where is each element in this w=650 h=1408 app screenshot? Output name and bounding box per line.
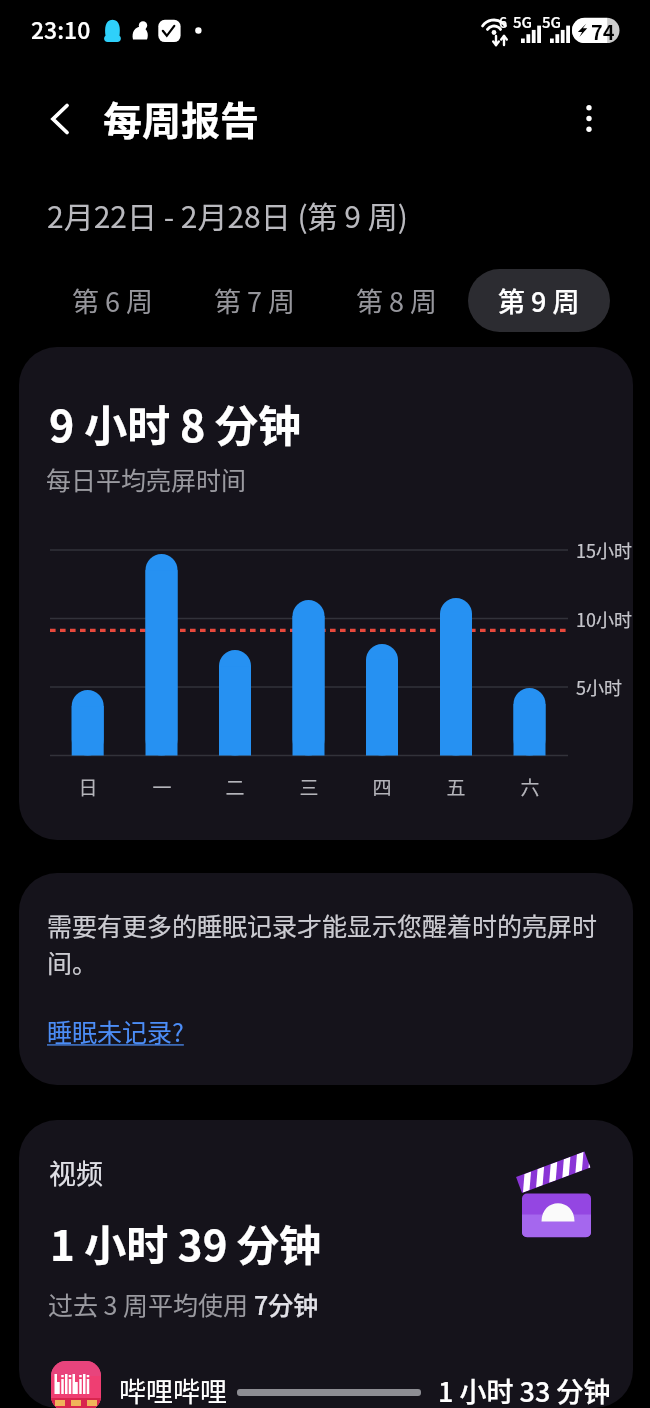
staticText: 第 9 周 (498, 281, 580, 320)
button[interactable]: 哔哩哔哩 (32, 1348, 620, 1408)
staticText: 日 (72, 773, 104, 801)
staticText: 5G (513, 11, 533, 33)
staticText: 四 (366, 773, 398, 801)
staticText: 23:10 (31, 12, 91, 45)
button[interactable]: 睡眠未记录? (47, 1013, 184, 1049)
button[interactable]: More options (560, 90, 618, 148)
button[interactable]: 第 7 周 (214, 281, 296, 320)
button[interactable]: 第 9 周 (468, 269, 610, 332)
button[interactable]: 视频 (19, 1120, 633, 1408)
button[interactable]: Back (28, 90, 86, 148)
staticText: 1 小时 39 分钟 (50, 1212, 321, 1273)
staticText: 二 (219, 773, 251, 801)
staticText: 哔哩哔哩 (119, 1371, 227, 1408)
staticText: 视频 (49, 1153, 103, 1192)
staticText: 过去 3 周平均使用 (48, 1286, 254, 1322)
button[interactable]: 每周报告 (103, 90, 260, 146)
staticText: 5小时 (576, 674, 622, 700)
staticText: 一 (146, 773, 178, 801)
staticText: 5G (542, 11, 562, 33)
staticText: 10小时 (576, 606, 632, 632)
staticText: 每周报告 (103, 90, 260, 146)
staticText: 2月22日 - 2月28日 (第 9 周) (47, 193, 408, 236)
button[interactable]: 第 8 周 (356, 281, 438, 320)
staticText: 6 (499, 12, 507, 32)
staticText: 睡眠未记录? (47, 1013, 184, 1049)
staticText: 每日平均亮屏时间 (46, 461, 247, 497)
staticText: 第 6 周 (72, 281, 154, 320)
button[interactable]: 需要有更多的睡眠记录才能显示您醒着时的亮屏时间。 (19, 873, 633, 1085)
staticText: 7分钟 (254, 1286, 319, 1322)
staticText: 第 8 周 (356, 281, 438, 320)
staticText: 第 7 周 (214, 281, 296, 320)
button[interactable]: 9 小时 8 分钟 (19, 347, 633, 840)
staticText: 需要有更多的睡眠记录才能显示您醒着时的亮屏时间。 (47, 907, 609, 980)
staticText: 74 (591, 17, 615, 46)
staticText: 9 小时 8 分钟 (49, 392, 302, 454)
staticText: 三 (293, 773, 325, 801)
staticText: 15小时 (576, 537, 632, 563)
button[interactable]: 第 6 周 (72, 281, 154, 320)
staticText: 五 (440, 773, 472, 801)
staticText: 六 (514, 773, 546, 801)
staticText: 1 小时 33 分钟 (438, 1371, 611, 1408)
